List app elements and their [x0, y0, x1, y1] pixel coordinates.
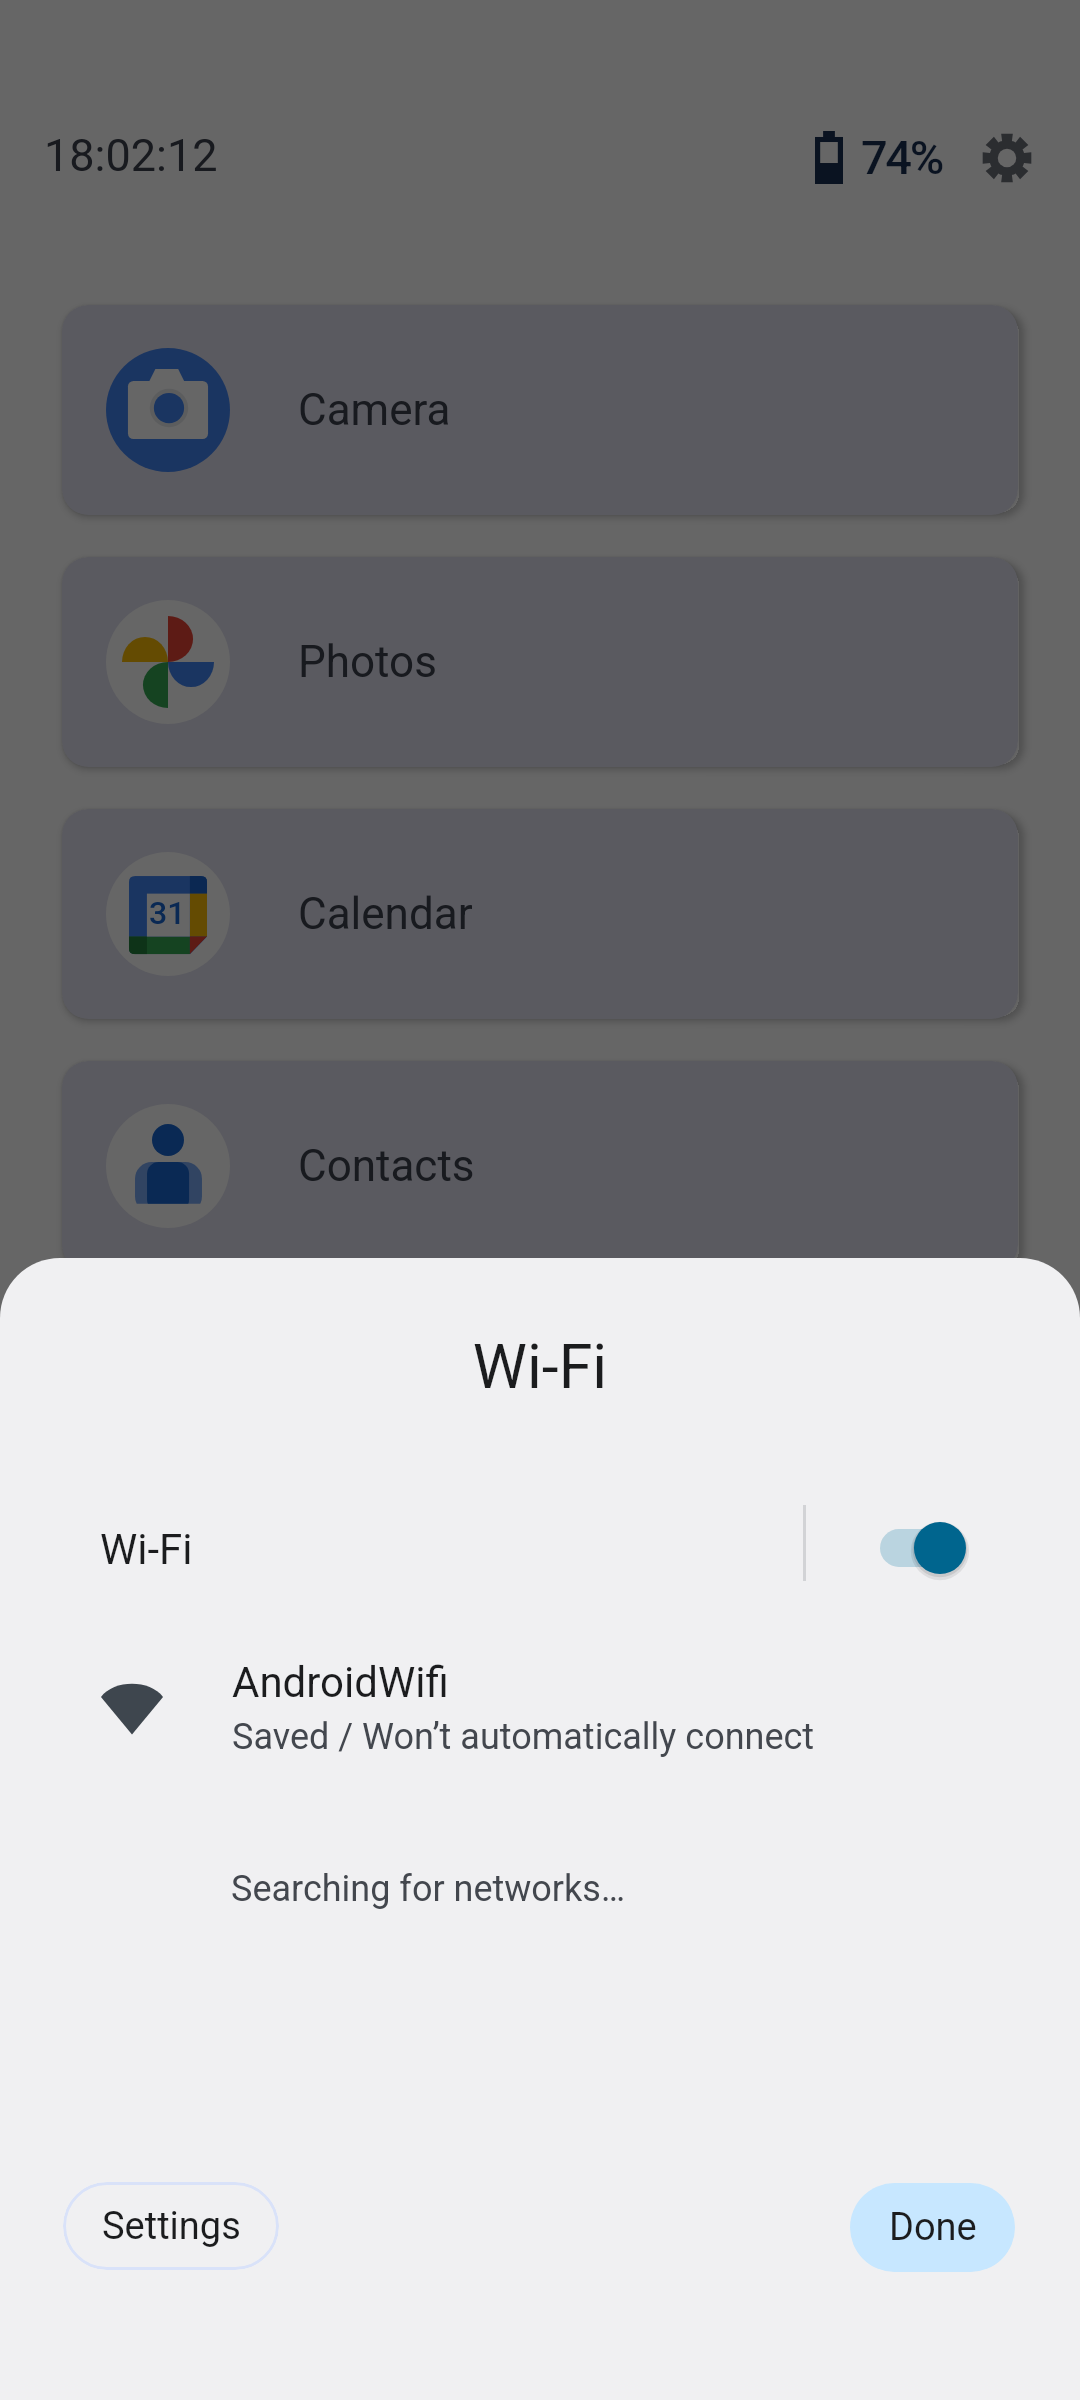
staticText: Wi-Fi	[0, 1331, 1080, 1402]
staticText: Searching for networks…	[231, 1868, 625, 1910]
button[interactable]: Camera	[62, 305, 1018, 515]
staticText: AndroidWifi	[232, 1658, 449, 1707]
button[interactable]: AndroidWifi	[0, 1643, 1080, 1773]
staticText: Contacts	[298, 1140, 475, 1192]
staticText: Wi-Fi	[100, 1525, 193, 1574]
staticText: Saved / Won’t automatically connect	[232, 1716, 815, 1758]
staticText: Photos	[298, 636, 437, 688]
staticText: 18:02:12	[44, 129, 218, 182]
staticText: Calendar	[298, 888, 473, 940]
button[interactable]: Done	[850, 2183, 1015, 2272]
staticText: Camera	[298, 384, 451, 436]
staticText: 74%	[861, 130, 942, 185]
button[interactable]: Contacts	[62, 1061, 1018, 1271]
staticText: 31	[149, 894, 186, 932]
staticText: Settings	[102, 2204, 241, 2249]
button[interactable]: Settings	[63, 2182, 279, 2270]
staticText: Done	[889, 2205, 977, 2250]
button[interactable]: 31	[62, 809, 1018, 1019]
button[interactable]: Photos	[62, 557, 1018, 767]
button[interactable]: Wi-Fi	[0, 1479, 1080, 1619]
button[interactable]: Settings	[974, 125, 1040, 191]
